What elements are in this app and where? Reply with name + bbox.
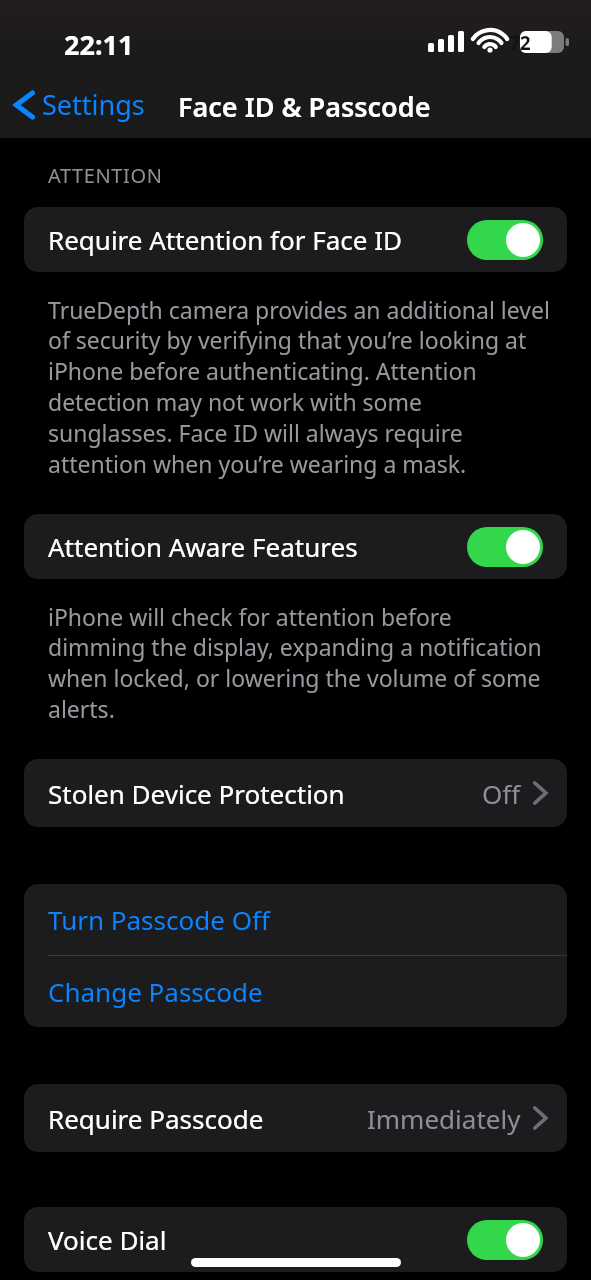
button[interactable]	[467, 527, 543, 567]
staticText: Stolen Device Protection	[48, 776, 482, 811]
button[interactable]: Settings	[8, 82, 151, 127]
button[interactable]: Stolen Device Protection	[24, 759, 567, 827]
button[interactable]: Attention Aware Features	[24, 514, 567, 579]
staticText: iPhone will check for attention before d…	[48, 601, 551, 725]
staticText: Settings	[42, 86, 145, 123]
staticText: 72	[509, 30, 531, 56]
button[interactable]	[467, 1220, 543, 1260]
staticText: ATTENTION	[48, 162, 163, 189]
staticText: Off	[482, 776, 521, 811]
button[interactable]: Change Passcode	[24, 956, 567, 1027]
button[interactable]: Require Passcode	[24, 1084, 567, 1152]
staticText: TrueDepth camera provides an additional …	[48, 294, 551, 480]
staticText: Change Passcode	[48, 974, 263, 1009]
staticText: Turn Passcode Off	[48, 902, 270, 937]
button[interactable]: Voice Dial	[24, 1207, 567, 1272]
staticText: Face ID & Passcode	[178, 88, 431, 125]
button[interactable]: Turn Passcode Off	[24, 884, 567, 955]
staticText: Attention Aware Features	[48, 529, 467, 564]
button[interactable]	[467, 220, 543, 260]
staticText: Require Attention for Face ID	[48, 222, 467, 257]
staticText: 22:11	[64, 26, 134, 63]
staticText: Require Passcode	[48, 1101, 367, 1136]
staticText: Immediately	[367, 1101, 521, 1136]
button[interactable]: Require Attention for Face ID	[24, 207, 567, 272]
staticText: Voice Dial	[48, 1222, 467, 1257]
